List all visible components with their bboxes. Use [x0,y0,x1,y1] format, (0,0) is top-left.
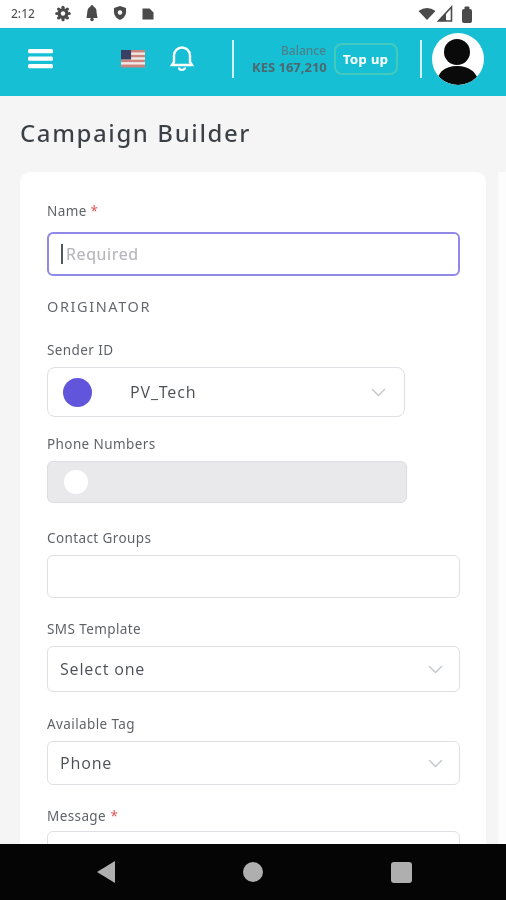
staticText: Campaign Builder [20,116,252,149]
button[interactable] [47,555,460,598]
button[interactable]: Phone [47,741,460,785]
staticText: Top up [343,50,389,68]
button[interactable]: Top up [334,43,398,75]
staticText: Available Tag [47,715,136,733]
staticText: SMS Template [47,620,142,638]
button[interactable] [121,50,145,67]
staticText: Select one [60,658,146,680]
button[interactable]: PV_Tech [47,367,405,417]
button[interactable]: Required [47,232,460,276]
button[interactable] [47,461,407,503]
staticText: Phone Numbers [47,435,156,453]
button[interactable] [168,46,196,72]
staticText: KES 167,210 [252,58,327,76]
staticText: 2:12 [11,5,35,21]
staticText: Sender ID [47,341,114,359]
staticText: ORIGINATOR [47,296,152,316]
button[interactable] [47,831,460,891]
button[interactable]: Select one [47,646,460,692]
staticText: Message [47,807,107,825]
staticText: Name [47,202,87,220]
button[interactable] [82,848,130,896]
button[interactable] [377,848,425,896]
staticText: Phone [60,752,113,774]
staticText: PV_Tech [130,381,197,403]
staticText: * [107,807,118,825]
staticText: * [87,202,98,220]
button[interactable] [18,47,63,77]
staticText: Balance [281,42,327,58]
staticText: Required [66,243,139,265]
button[interactable] [229,848,277,896]
button[interactable] [432,33,484,85]
staticText: Contact Groups [47,529,152,547]
